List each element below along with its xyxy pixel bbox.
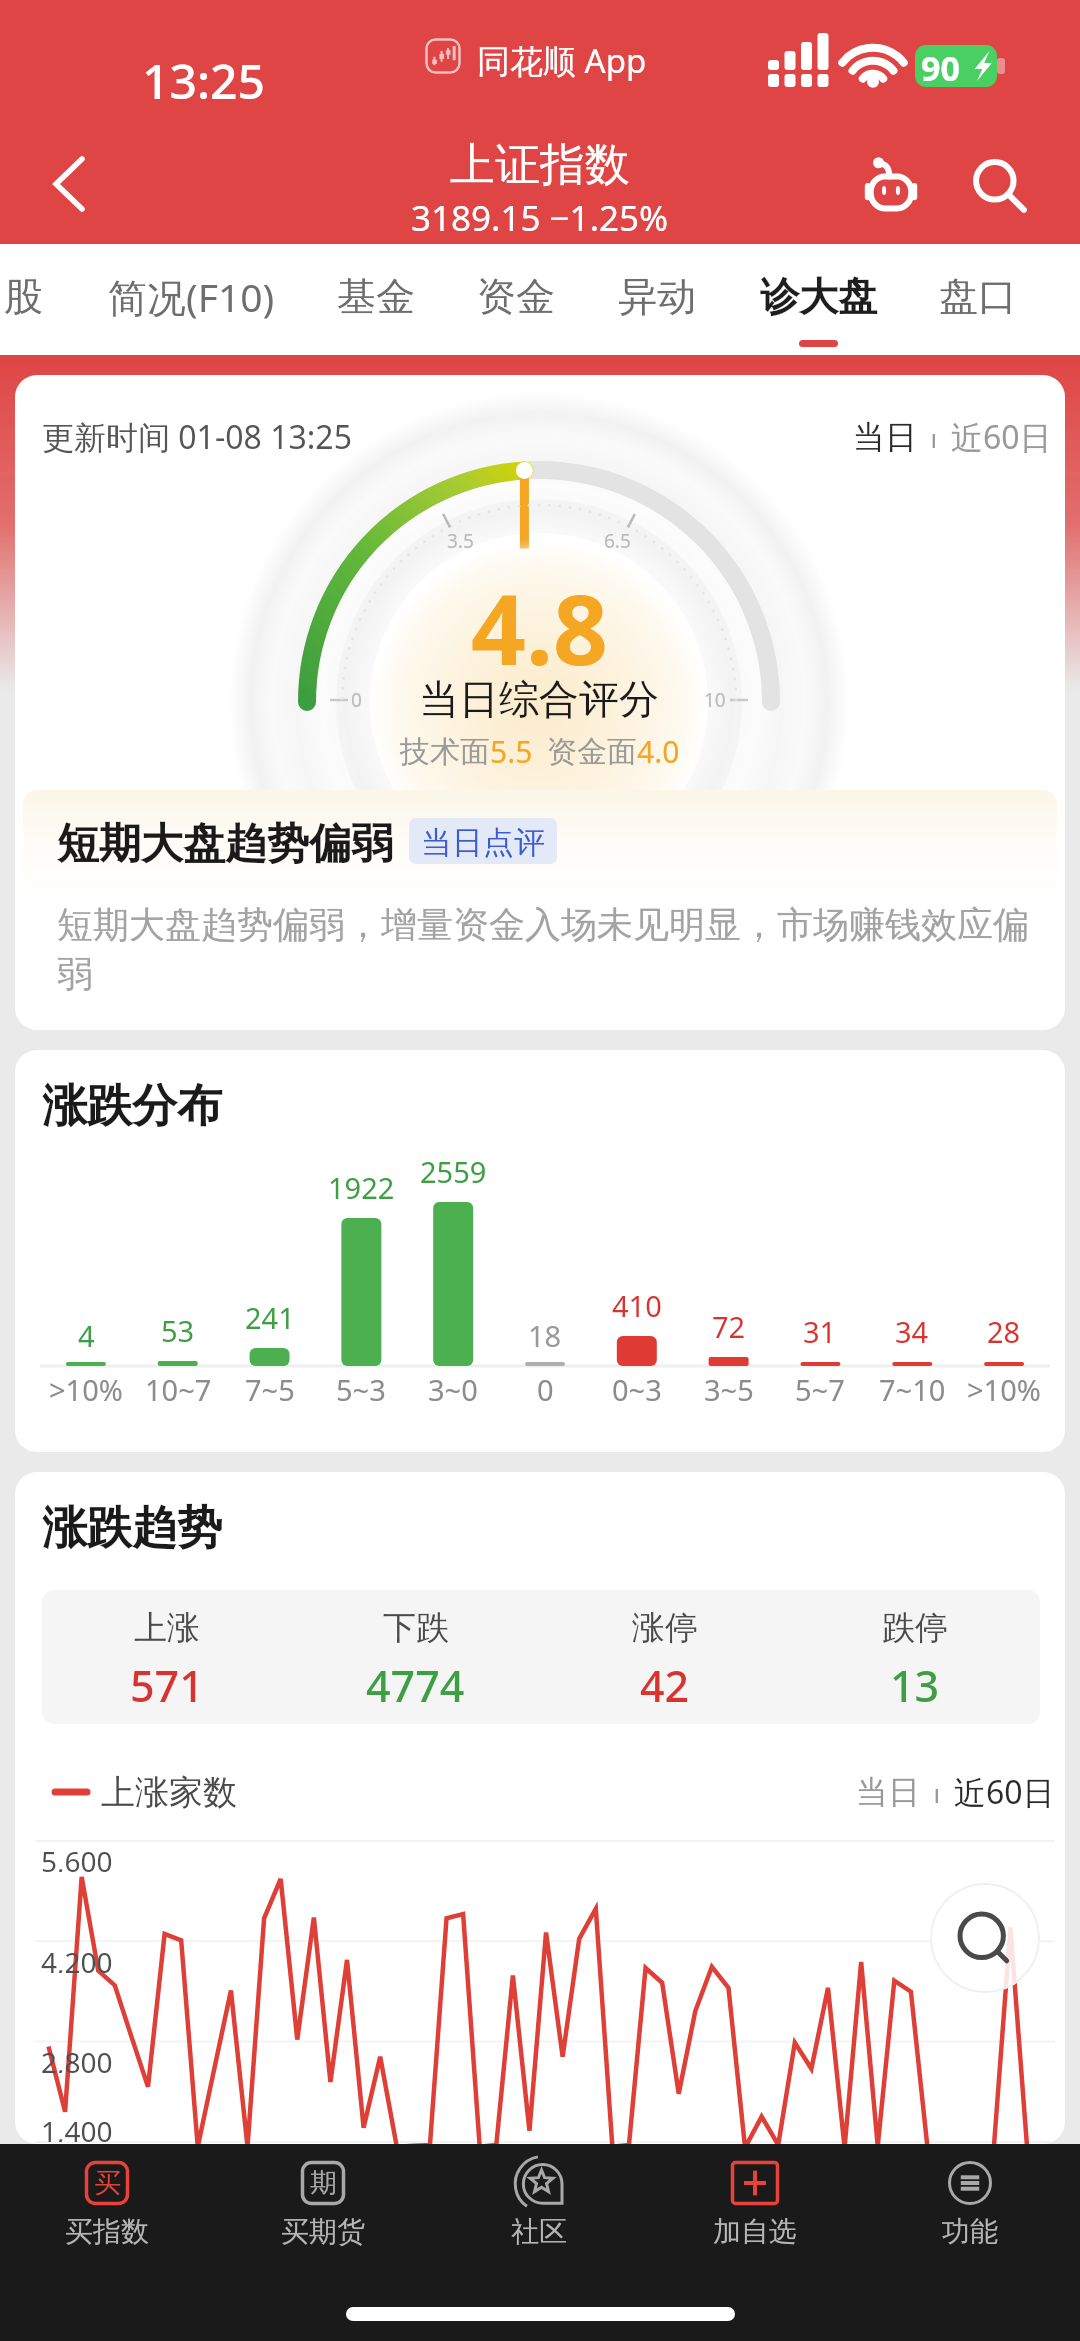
staticText: 上涨 (134, 1607, 200, 1649)
staticText: 下跌 (383, 1607, 449, 1649)
staticText: 基金 (337, 272, 415, 321)
staticText: 资金面 (547, 733, 637, 771)
staticText: 盘口 (939, 272, 1017, 321)
staticText: 买期货 (281, 2214, 365, 2249)
staticText: 诊大盘 (760, 272, 877, 321)
staticText: 功能 (942, 2214, 998, 2249)
staticText: ı (920, 1775, 954, 1810)
staticText: 53 (161, 1311, 195, 1350)
staticText: 42 (640, 1656, 690, 1712)
button[interactable]: 功能 (866, 2144, 1074, 2274)
staticText: 5~3 (336, 1370, 386, 1409)
button[interactable]: AI assistant (836, 133, 946, 239)
button[interactable]: 上涨 (42, 1590, 291, 1724)
staticText: 买 (94, 2166, 121, 2200)
staticText: 0~3 (612, 1370, 662, 1409)
button[interactable]: 近60日 (954, 1770, 1055, 1814)
staticText: 4 (78, 1316, 95, 1355)
staticText: 简况(F10) (108, 270, 275, 323)
staticText: 3~5 (704, 1370, 754, 1409)
staticText: 股 (4, 272, 43, 321)
staticText: 短期大盘趋势偏弱 (57, 818, 393, 864)
button[interactable]: 当日 (853, 417, 917, 457)
staticText: 18 (528, 1316, 562, 1355)
staticText: 4774 (366, 1656, 465, 1712)
staticText: 期 (310, 2166, 337, 2200)
staticText: 10~7 (145, 1370, 212, 1409)
button[interactable]: 下跌 (291, 1590, 540, 1724)
staticText: 6.5 (604, 528, 631, 554)
button[interactable]: 资金 (461, 252, 571, 340)
button[interactable]: 近60日 (951, 415, 1052, 459)
staticText: 4.0 (637, 731, 680, 772)
button[interactable]: 盘口 (923, 252, 1033, 340)
staticText: 5~7 (795, 1370, 845, 1409)
staticText: 跌停 (882, 1607, 948, 1649)
staticText: 410 (612, 1286, 662, 1325)
staticText: 异动 (618, 272, 696, 321)
staticText: 2559 (420, 1152, 487, 1191)
staticText: 上涨家数 (101, 1771, 237, 1814)
staticText: >10% (49, 1370, 123, 1409)
staticText: 13:25 (142, 48, 265, 100)
button[interactable]: 涨停 (540, 1590, 790, 1724)
staticText: 13 (890, 1656, 940, 1712)
button[interactable]: 异动 (602, 252, 712, 340)
staticText: 0 (351, 687, 362, 713)
staticText: 7~10 (879, 1370, 946, 1409)
button[interactable]: 期 (219, 2144, 427, 2274)
staticText: 涨停 (632, 1607, 698, 1649)
staticText: 同花顺 App (477, 38, 647, 83)
staticText: 31 (803, 1312, 837, 1351)
staticText: 短期大盘趋势偏弱，增量资金入场未见明显，市场赚钱效应偏弱 (57, 902, 1047, 997)
staticText: 加自选 (713, 2214, 797, 2249)
staticText: 涨跌趋势 (42, 1500, 222, 1557)
staticText: 241 (245, 1298, 295, 1337)
button[interactable]: 股 (0, 252, 57, 340)
button[interactable]: 诊大盘 (742, 252, 894, 340)
staticText: 3189.15 −1.25% (411, 194, 669, 238)
staticText: 5,600 (41, 1842, 113, 1872)
staticText: 2,800 (41, 2043, 113, 2073)
staticText: 1922 (328, 1168, 395, 1207)
staticText: 34 (895, 1312, 929, 1351)
staticText: 资金 (477, 272, 555, 321)
staticText: 90 (921, 45, 960, 87)
staticText: 4,200 (41, 1943, 113, 1973)
button[interactable]: Zoom chart (930, 1883, 1040, 1993)
button[interactable]: 买 (3, 2144, 211, 2274)
button[interactable]: 社区 (435, 2144, 643, 2274)
staticText: 3.5 (447, 528, 474, 554)
staticText: 当日综合评分 (419, 674, 659, 724)
button[interactable]: 简况(F10) (91, 252, 291, 340)
button[interactable]: 基金 (321, 252, 431, 340)
staticText: 更新时间 01-08 13:25 (42, 415, 352, 459)
button[interactable]: Back (0, 128, 138, 240)
staticText: 社区 (511, 2214, 567, 2249)
staticText: 1,400 (41, 2112, 113, 2142)
staticText: 4.8 (471, 562, 608, 682)
staticText: ı (917, 420, 951, 455)
button[interactable]: 加自选 (651, 2144, 859, 2274)
staticText: 10 (704, 687, 726, 713)
staticText: 5.5 (490, 731, 533, 772)
staticText: >10% (967, 1370, 1041, 1409)
staticText: 571 (130, 1656, 204, 1712)
staticText: 28 (987, 1312, 1021, 1351)
button[interactable]: Search (947, 133, 1053, 239)
button[interactable]: 当日 (856, 1772, 920, 1812)
staticText: 3~0 (428, 1370, 478, 1409)
staticText: 买指数 (65, 2214, 149, 2249)
staticText: 7~5 (245, 1370, 295, 1409)
staticText: 当日点评 (421, 823, 545, 859)
staticText: 技术面 (400, 733, 490, 771)
staticText: 上证指数 (450, 137, 630, 187)
staticText: 72 (712, 1307, 746, 1346)
staticText: 0 (537, 1370, 554, 1409)
staticText: 涨跌分布 (42, 1078, 222, 1135)
button[interactable]: 跌停 (790, 1590, 1040, 1724)
